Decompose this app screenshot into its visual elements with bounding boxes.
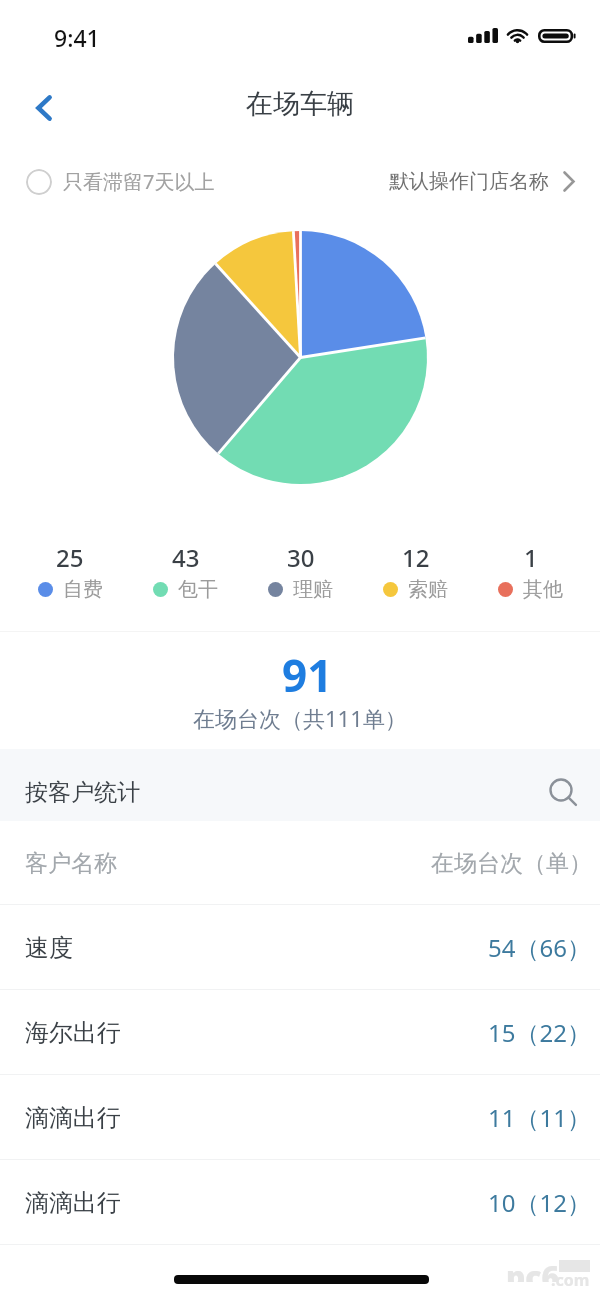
button[interactable]: 速度 <box>0 905 600 990</box>
button[interactable]: 12 <box>358 541 473 602</box>
button[interactable]: 25 <box>12 541 128 602</box>
staticText: 15（22） <box>488 1016 591 1049</box>
button[interactable]: 只看滞留7天以上 <box>26 168 215 195</box>
staticText: 30 <box>287 541 315 574</box>
button[interactable]: 默认操作门店名称 <box>389 169 575 194</box>
staticText: 在场车辆 <box>246 87 354 121</box>
staticText: 自费 <box>63 577 103 602</box>
staticText: 43 <box>172 541 200 574</box>
staticText: 1 <box>524 541 538 574</box>
button[interactable]: 滴滴出行 <box>0 1160 600 1245</box>
staticText: 12 <box>402 541 430 574</box>
staticText: pc6 <box>506 1256 560 1282</box>
staticText: 索赔 <box>408 577 448 602</box>
staticText: 速度 <box>25 933 73 963</box>
staticText: 在场台次（单） <box>431 849 592 878</box>
staticText: 91 <box>282 645 333 705</box>
staticText: 客户名称 <box>25 849 117 878</box>
staticText: 理赔 <box>293 577 333 602</box>
button[interactable]: Back <box>15 79 73 137</box>
button[interactable]: Search <box>541 770 589 818</box>
staticText: 滴滴出行 <box>25 1188 121 1218</box>
staticText: 按客户统计 <box>25 778 140 807</box>
button[interactable]: 30 <box>243 541 358 602</box>
staticText: .com <box>551 1269 590 1291</box>
staticText: 54（66） <box>488 931 591 964</box>
button[interactable]: 滴滴出行 <box>0 1075 600 1160</box>
button[interactable]: 1 <box>473 541 588 602</box>
button[interactable]: 海尔出行 <box>0 990 600 1075</box>
staticText: 在场台次（共111单） <box>193 703 407 733</box>
staticText: 海尔出行 <box>25 1018 121 1048</box>
staticText: 9:41 <box>54 22 100 53</box>
staticText: 只看滞留7天以上 <box>63 168 215 195</box>
staticText: 25 <box>56 541 84 574</box>
staticText: 11（11） <box>488 1101 591 1134</box>
button[interactable]: 43 <box>128 541 243 602</box>
staticText: 10（12） <box>488 1186 591 1219</box>
staticText: 包干 <box>178 577 218 602</box>
staticText: 滴滴出行 <box>25 1103 121 1133</box>
staticText: 其他 <box>523 577 563 602</box>
staticText: 默认操作门店名称 <box>389 169 549 194</box>
